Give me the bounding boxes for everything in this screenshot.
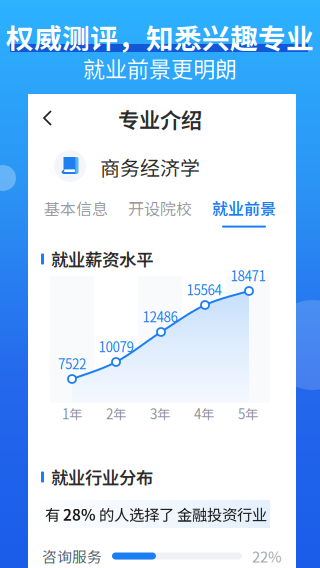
staticText: 开设院校 (128, 196, 192, 220)
staticText: 5年 (238, 404, 258, 423)
staticText: 商务经济学 (100, 152, 200, 181)
button[interactable]: 就业前景 (202, 196, 286, 228)
staticText: 3年 (150, 404, 170, 423)
staticText: 有 28% 的人选择了 金融投资行业 (45, 503, 267, 525)
button[interactable]: 基本信息 (34, 196, 118, 228)
staticText: 12486 (142, 307, 177, 326)
staticText: 18471 (230, 266, 265, 285)
staticText: 权威测评，知悉兴趣专业 (6, 17, 314, 57)
staticText: 1年 (62, 404, 82, 423)
staticText: 就业行业分布 (51, 464, 153, 490)
staticText: 专业介绍 (118, 104, 202, 134)
staticText: 就业薪资水平 (51, 246, 153, 272)
staticText: 咨询服务 (42, 545, 102, 567)
staticText: 7522 (58, 354, 86, 373)
staticText: 就业前景 (212, 196, 276, 220)
staticText: 基本信息 (44, 196, 108, 220)
button[interactable]: Back (36, 106, 60, 130)
staticText: 22% (252, 545, 282, 567)
staticText: 4年 (194, 404, 214, 423)
staticText: 15564 (186, 280, 221, 299)
staticText: 10079 (98, 337, 133, 356)
button[interactable]: 开设院校 (118, 196, 202, 228)
staticText: 就业前景更明朗 (83, 52, 237, 84)
staticText: 2年 (106, 404, 126, 423)
